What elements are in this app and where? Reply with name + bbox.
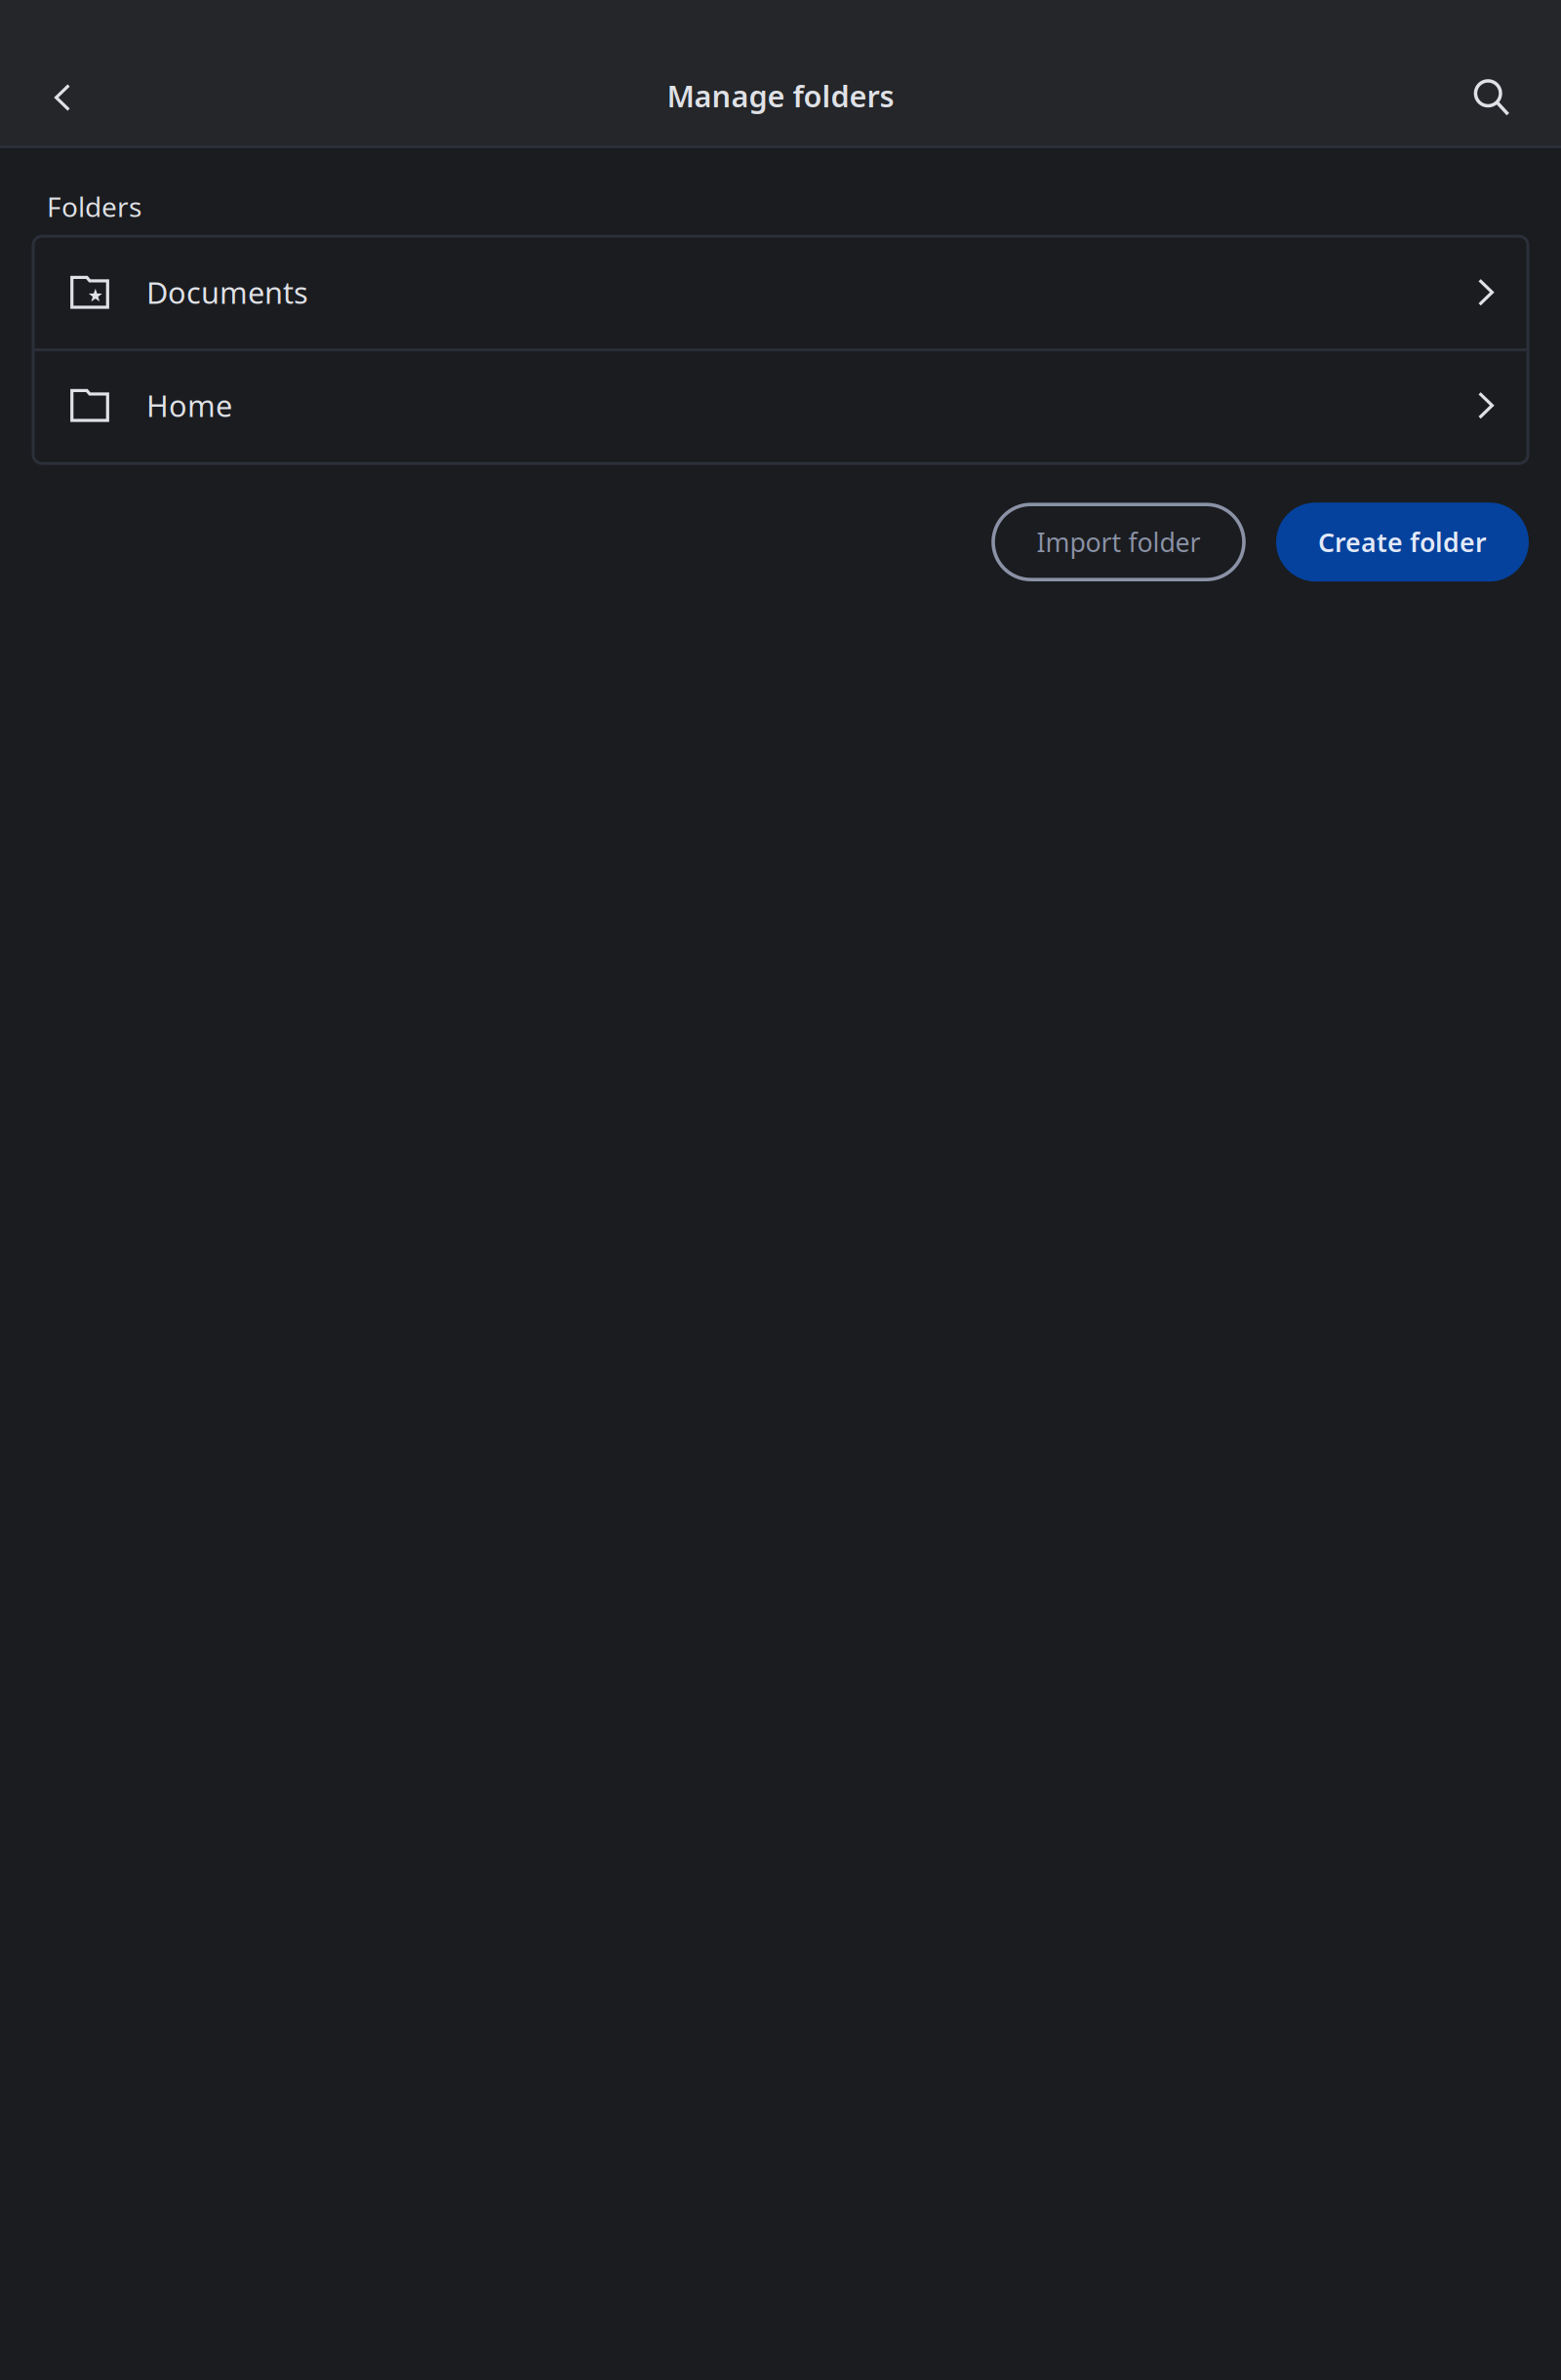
button[interactable]: Import folder (993, 504, 1244, 580)
button[interactable]: Create folder (1276, 503, 1529, 582)
staticText: Home (146, 386, 232, 425)
button[interactable]: Search (1464, 70, 1519, 125)
button[interactable]: Back (35, 70, 90, 125)
staticText: Manage folders (667, 76, 894, 115)
button[interactable]: Home (33, 351, 1528, 464)
button[interactable]: Documents (33, 236, 1528, 348)
staticText: Create folder (1318, 525, 1487, 559)
staticText: Folders (47, 188, 141, 225)
staticText: Documents (146, 272, 308, 312)
staticText: Import folder (1037, 525, 1201, 559)
